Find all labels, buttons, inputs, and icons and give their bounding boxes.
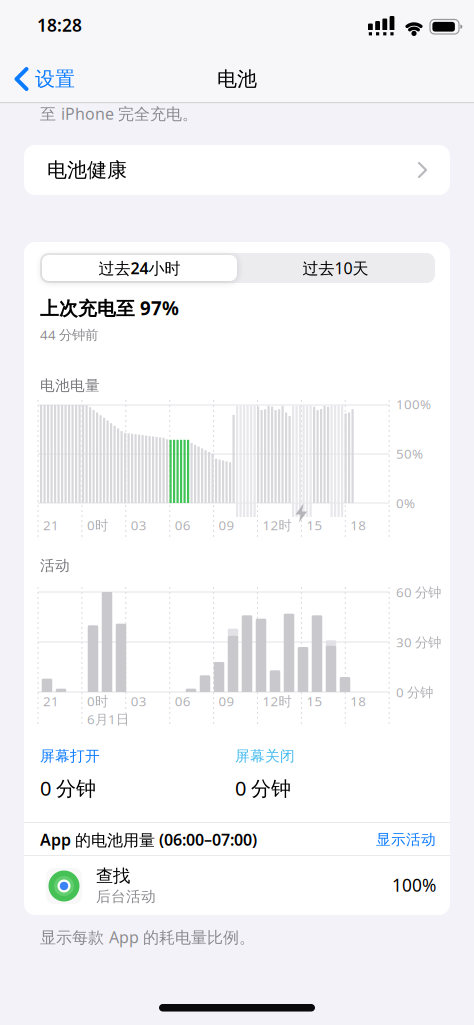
staticText: 03 — [131, 692, 147, 710]
staticText: 30 分钟 — [396, 633, 441, 651]
staticText: 查找 — [96, 865, 130, 887]
staticText: 上次充电至 97% — [40, 296, 179, 320]
button[interactable]: 过去10天 — [238, 255, 433, 281]
staticText: 0时 — [87, 516, 108, 534]
staticText: 06 — [175, 692, 191, 710]
staticText: 18:28 — [37, 13, 82, 36]
staticText: 50% — [396, 445, 423, 462]
staticText: 44 分钟前 — [40, 326, 98, 343]
staticText: 21 — [43, 692, 59, 710]
button[interactable]: 设置 — [14, 63, 102, 95]
staticText: 屏幕打开 — [40, 747, 100, 765]
staticText: 12时 — [262, 516, 291, 534]
staticText: 0 分钟 — [40, 775, 96, 801]
staticText: 100% — [392, 873, 436, 896]
staticText: 09 — [219, 516, 235, 534]
staticText: 后台活动 — [96, 887, 156, 905]
staticText: 活动 — [40, 556, 70, 574]
staticText: 18 — [350, 692, 366, 710]
staticText: 03 — [131, 516, 147, 534]
staticText: 电池 — [217, 67, 257, 91]
staticText: 06 — [175, 516, 191, 534]
staticText: 电池健康 — [47, 158, 127, 182]
staticText: 过去10天 — [302, 257, 368, 279]
staticText: 显示每款 App 的耗电量比例。 — [40, 926, 255, 948]
button[interactable]: 显示活动 — [336, 827, 436, 851]
staticText: 0% — [396, 494, 415, 512]
staticText: 电池电量 — [40, 376, 100, 394]
staticText: 设置 — [35, 67, 75, 91]
button[interactable]: 过去24小时 — [42, 255, 237, 281]
staticText: 18 — [350, 516, 366, 534]
staticText: 0 分钟 — [396, 683, 433, 701]
staticText: 0 分钟 — [235, 775, 291, 801]
staticText: 过去24小时 — [98, 257, 180, 279]
staticText: 屏幕关闭 — [235, 747, 295, 765]
staticText: 15 — [306, 516, 322, 534]
staticText: 显示活动 — [376, 830, 436, 848]
staticText: 100% — [396, 395, 431, 413]
staticText: 15 — [306, 692, 322, 710]
staticText: 21 — [43, 516, 59, 534]
staticText: App 的电池用量 (06:00–07:00) — [40, 829, 257, 850]
staticText: 12时 — [262, 692, 291, 710]
staticText: 至 iPhone 完全充电。 — [40, 103, 198, 124]
staticText: 60 分钟 — [396, 583, 441, 601]
staticText: 09 — [219, 692, 235, 710]
staticText: 6月1日 — [87, 710, 129, 728]
button[interactable]: 电池健康 — [24, 145, 450, 195]
staticText: 0时 — [87, 692, 108, 710]
button[interactable]: 查找 — [24, 856, 450, 915]
